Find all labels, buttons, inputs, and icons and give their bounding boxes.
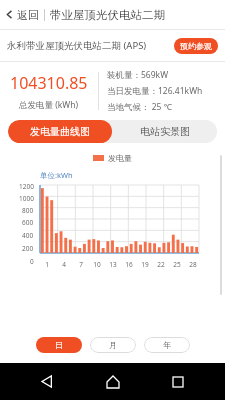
staticText: 200 (22, 244, 34, 253)
button[interactable]: 返回 (0, 0, 44, 29)
button[interactable]: 电站实景图 (112, 120, 217, 143)
button[interactable]: Home (94, 363, 132, 400)
staticText: 10 (93, 260, 101, 269)
staticText: 日 (55, 340, 63, 350)
staticText: 当地气候： 25 ℃ (107, 101, 173, 113)
staticText: 发电量 (108, 153, 132, 163)
staticText: 年 (163, 340, 171, 350)
staticText: 装机量：569kW (107, 69, 169, 81)
staticText: 400 (22, 231, 34, 240)
staticText: 单位:kWh (40, 170, 73, 180)
staticText: 永利带业屋顶光伏电站二期 (APS) (7, 39, 174, 52)
button[interactable]: 月 (90, 337, 136, 353)
staticText: 22 (157, 260, 165, 269)
staticText: 7 (79, 260, 83, 269)
staticText: 0 (30, 257, 34, 266)
staticText: 1 (45, 260, 49, 269)
staticText: 28 (189, 260, 197, 269)
button[interactable]: 预约参观 (174, 38, 218, 54)
button[interactable]: 日 (36, 337, 82, 353)
staticText: 13 (109, 260, 117, 269)
button[interactable]: 发电量曲线图 (8, 120, 112, 143)
staticText: 19 (141, 260, 149, 269)
staticText: 发电量曲线图 (30, 125, 90, 138)
staticText: 1200 (19, 182, 34, 191)
staticText: 104310.85 (10, 72, 88, 94)
staticText: 4 (62, 260, 66, 269)
staticText: 预约参观 (180, 41, 212, 51)
staticText: 总发电量 (kWh) (19, 99, 79, 111)
staticText: 1000 (19, 194, 34, 203)
staticText: 电站实景图 (140, 125, 190, 138)
staticText: 返回 (17, 8, 39, 22)
button[interactable]: Recents (159, 363, 197, 400)
staticText: 600 (22, 218, 34, 227)
staticText: 当日发电量：126.41kWh (107, 85, 203, 97)
staticText: 月 (109, 340, 117, 350)
staticText: 800 (22, 206, 34, 215)
staticText: 25 (173, 260, 181, 269)
staticText: 带业屋顶光伏电站二期 (50, 8, 165, 22)
button[interactable]: 年 (144, 337, 190, 353)
staticText: 16 (125, 260, 133, 269)
button[interactable]: Back (28, 363, 66, 400)
